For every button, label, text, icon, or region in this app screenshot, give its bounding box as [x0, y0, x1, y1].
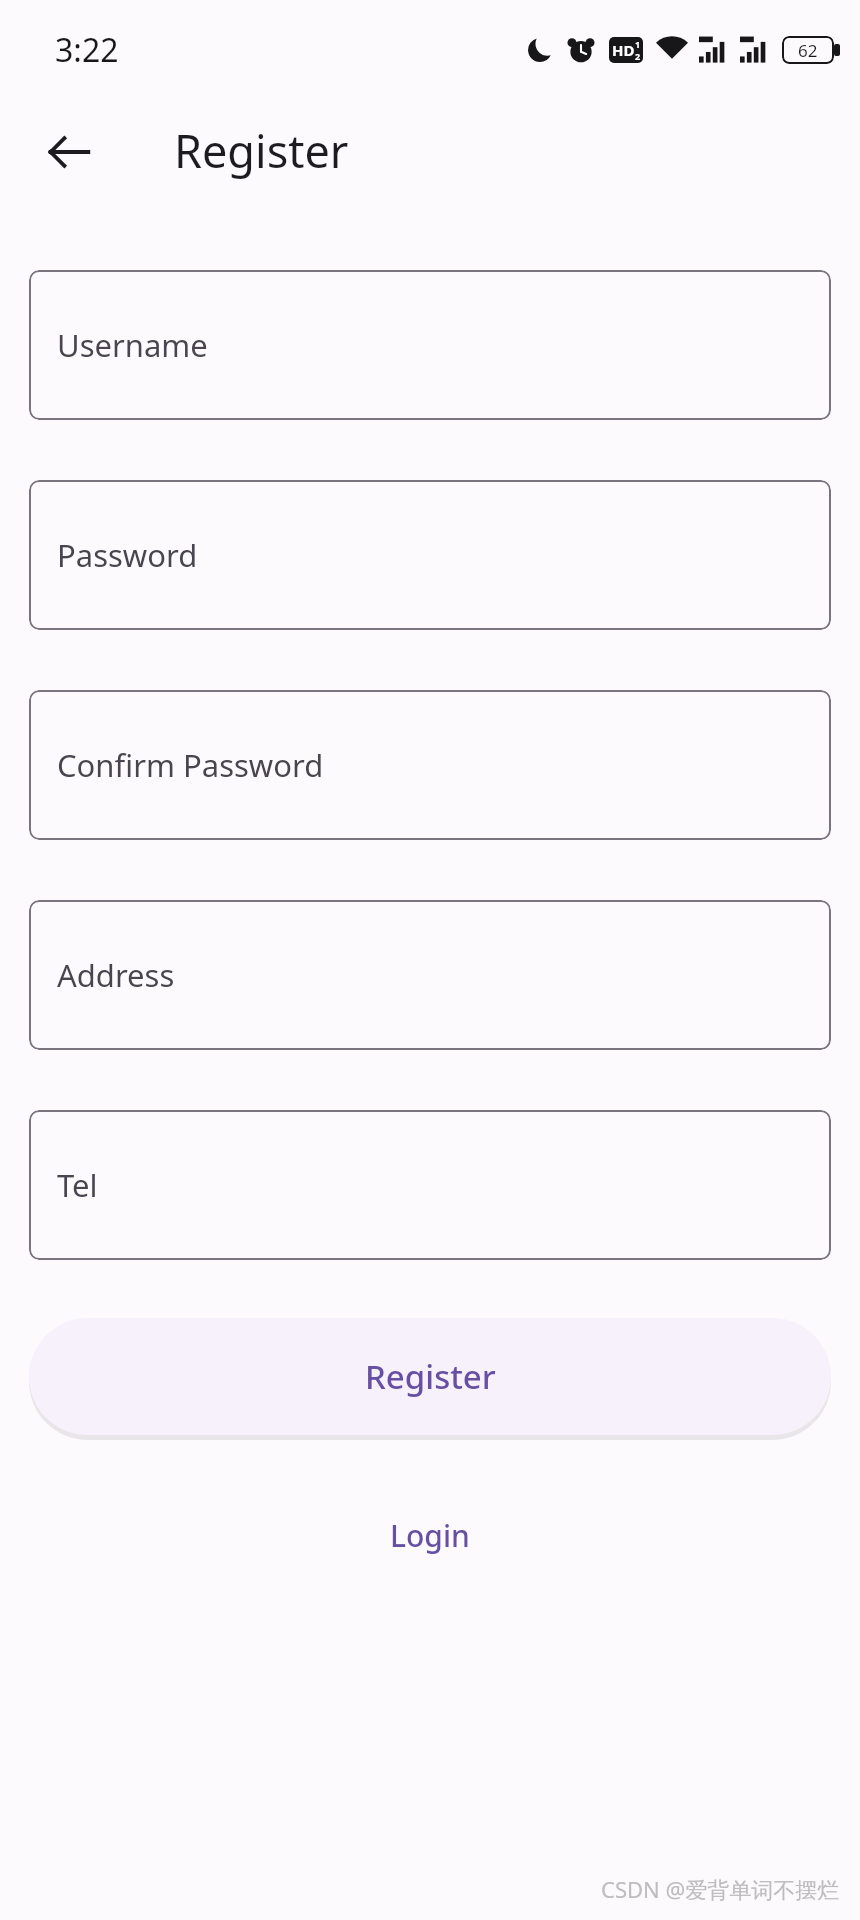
button[interactable]: Password: [29, 480, 831, 630]
staticText: CSDN @爱背单词不摆烂: [601, 1874, 840, 1904]
staticText: Confirm Password: [57, 744, 324, 786]
button[interactable]: Confirm Password: [29, 690, 831, 840]
staticText: Register: [365, 1354, 496, 1399]
button[interactable]: Login: [366, 1505, 494, 1566]
staticText: 2: [635, 50, 641, 62]
button[interactable]: Register: [29, 1318, 831, 1435]
button[interactable]: Username: [29, 270, 831, 420]
staticText: Register: [174, 120, 349, 181]
staticText: HD: [612, 40, 635, 60]
staticText: Tel: [57, 1164, 98, 1206]
staticText: Login: [390, 1515, 470, 1556]
button[interactable]: Tel: [29, 1110, 831, 1260]
staticText: 62: [798, 39, 818, 62]
staticText: Username: [57, 324, 208, 366]
staticText: 1: [635, 38, 641, 50]
staticText: 3:22: [55, 28, 119, 72]
button[interactable]: Back: [33, 116, 105, 188]
button[interactable]: Address: [29, 900, 831, 1050]
staticText: Password: [57, 534, 198, 576]
staticText: Address: [57, 954, 175, 996]
